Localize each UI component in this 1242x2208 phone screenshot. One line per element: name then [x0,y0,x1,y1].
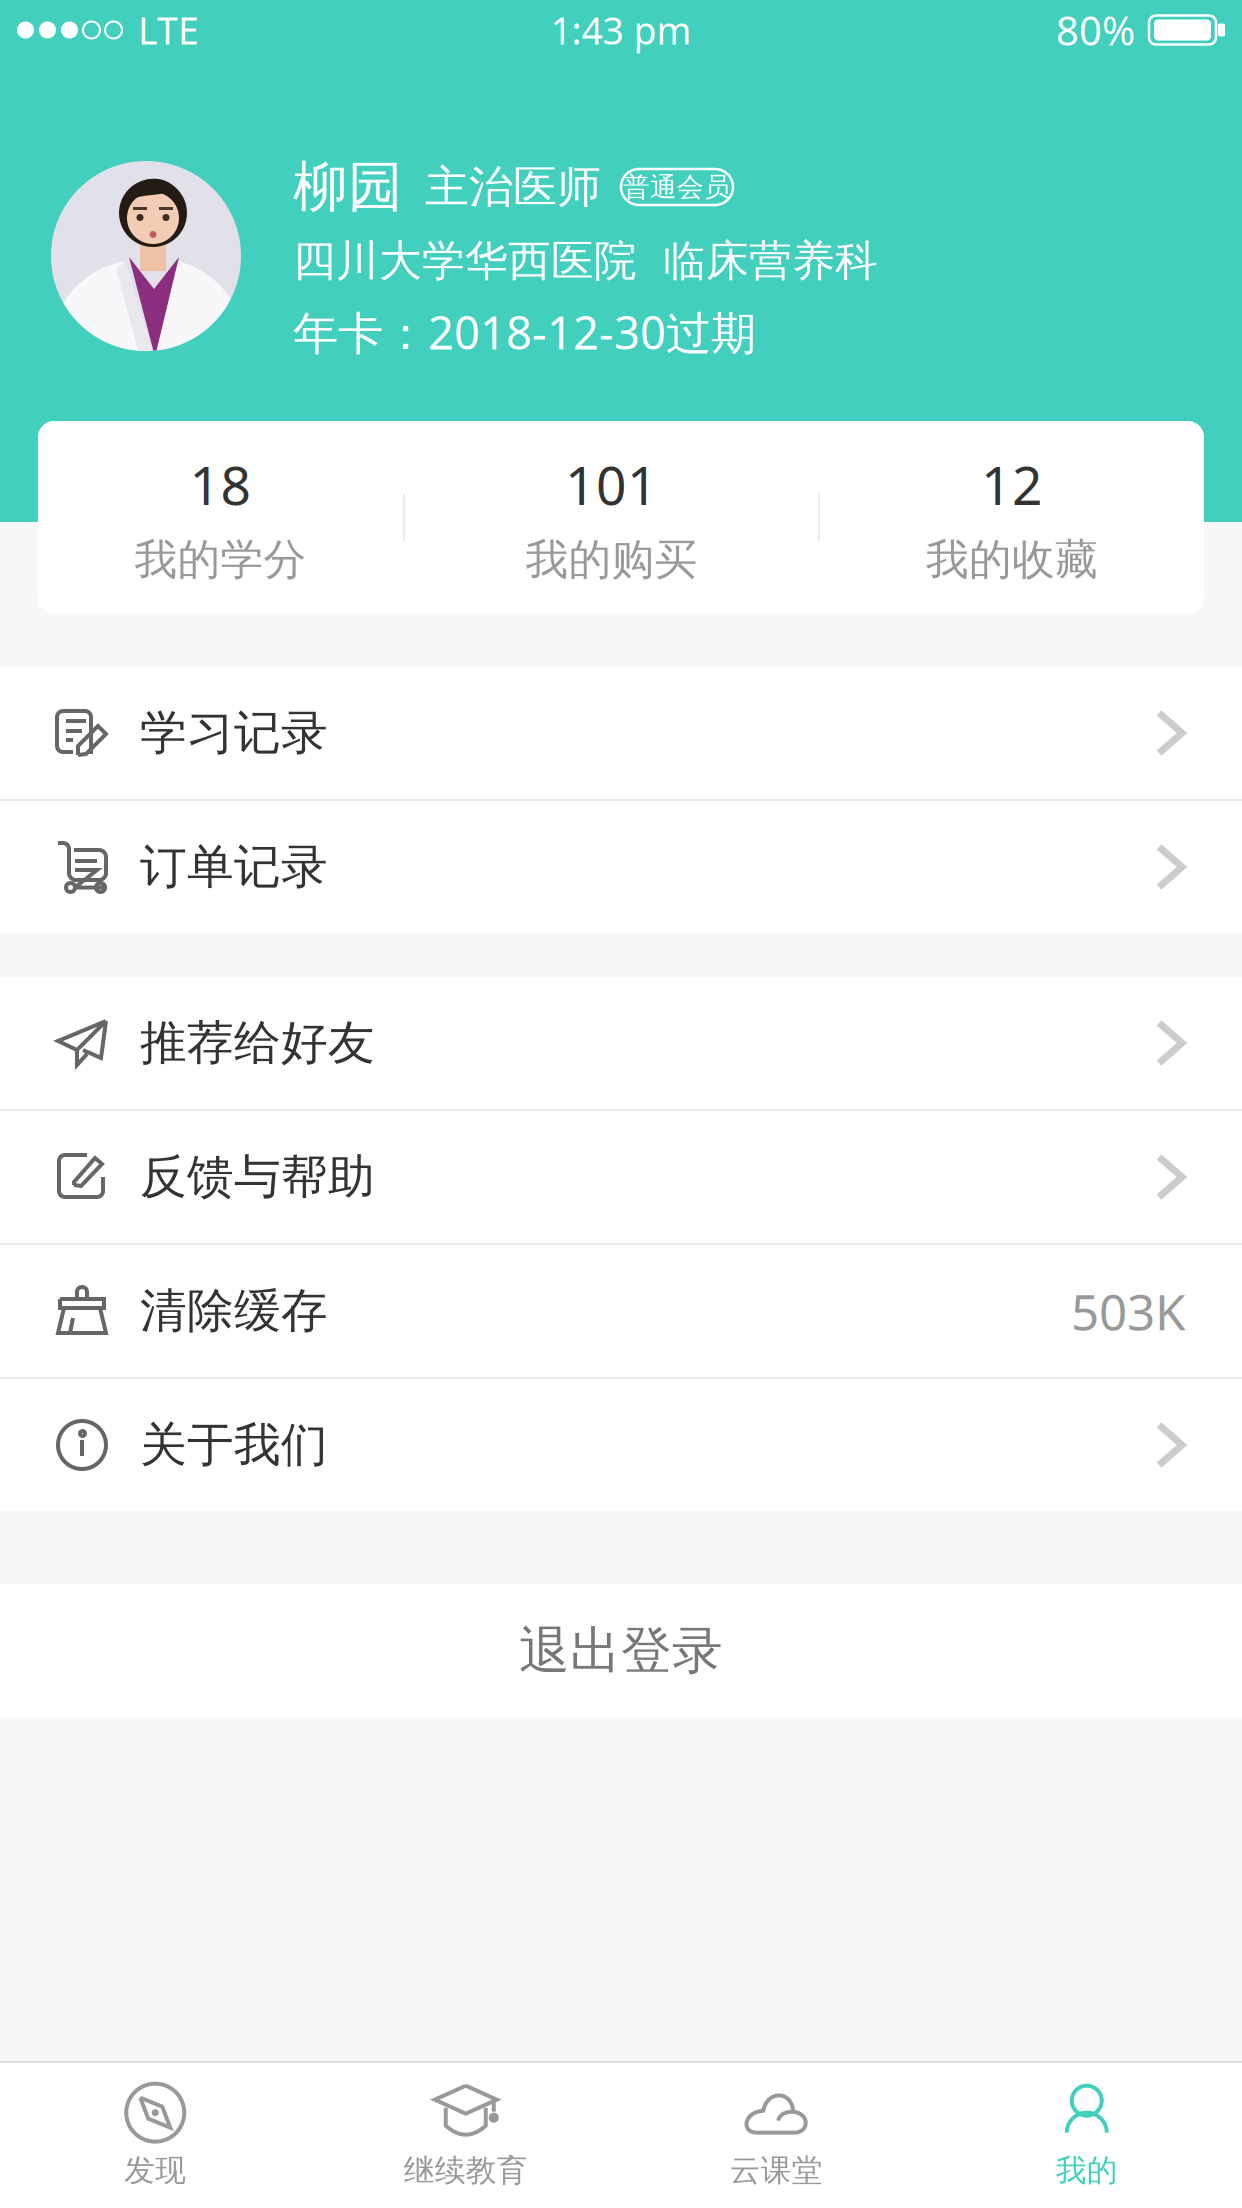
button[interactable]: 云课堂 [621,2063,931,2208]
staticText: 主治医师 [425,160,601,214]
staticText: 关于我们 [140,1416,328,1474]
staticText: 订单记录 [140,838,328,896]
staticText: 80% [1056,3,1135,56]
staticText: 101 [565,449,658,520]
staticText: 清除缓存 [140,1282,328,1340]
staticText: 柳园 [293,153,403,220]
staticText: 我的收藏 [926,534,1098,586]
staticText: 503K [1071,1278,1186,1344]
button[interactable]: 学习记录 [0,667,1242,799]
button[interactable]: 我的 [931,2063,1242,2208]
staticText: 发现 [124,2152,186,2189]
staticText: 12 [981,449,1043,520]
button[interactable]: 发现 [0,2063,310,2208]
button[interactable]: 反馈与帮助 [0,1111,1242,1243]
staticText: 普通会员 [623,171,731,203]
staticText: 18 [189,449,251,520]
staticText: 继续教育 [404,2152,528,2189]
staticText: 我的学分 [134,534,306,586]
staticText: 年卡：2018-12-30过期 [293,302,756,362]
button[interactable]: 18 [38,449,403,586]
button[interactable]: 101 [405,449,818,586]
staticText: 退出登录 [519,1620,723,1682]
staticText: 云课堂 [730,2152,823,2189]
button[interactable]: 清除缓存 [0,1245,1242,1377]
button[interactable]: 关于我们 [0,1379,1242,1511]
staticText: 推荐给好友 [140,1014,375,1072]
button[interactable]: 推荐给好友 [0,977,1242,1109]
button[interactable]: 继续教育 [310,2063,621,2208]
button[interactable]: 订单记录 [0,801,1242,933]
staticText: 我的 [1056,2152,1118,2189]
staticText: LTE [138,5,199,55]
button[interactable]: 12 [820,449,1204,586]
staticText: 反馈与帮助 [140,1148,375,1206]
button[interactable]: 退出登录 [0,1584,1242,1718]
staticText: 我的购买 [525,534,697,586]
staticText: 四川大学华西医院 临床营养科 [293,235,878,287]
staticText: 1:43 pm [550,5,691,55]
staticText: 学习记录 [140,704,328,762]
